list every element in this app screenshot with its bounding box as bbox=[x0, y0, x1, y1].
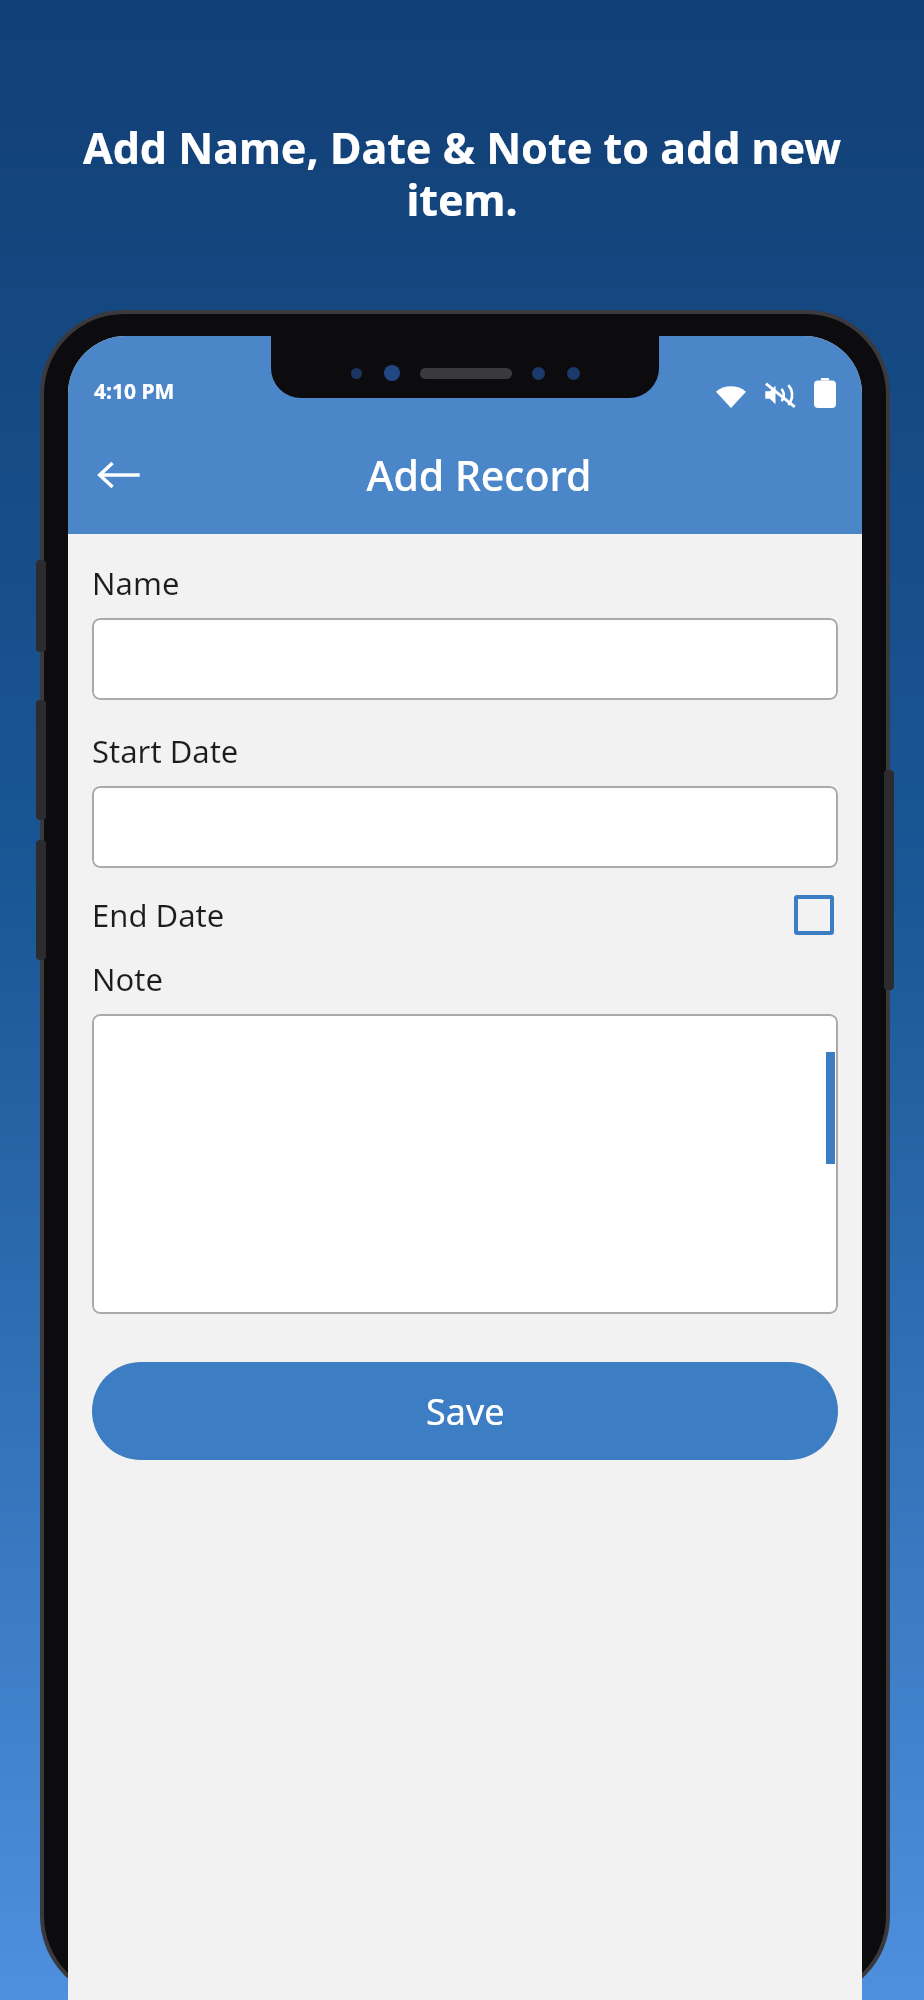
staticText: Save bbox=[426, 1387, 505, 1436]
other: Toggle end date bbox=[794, 895, 834, 935]
staticText: End Date bbox=[92, 894, 225, 936]
staticText: Add Record bbox=[126, 447, 832, 503]
button[interactable] bbox=[92, 1014, 838, 1314]
button[interactable] bbox=[92, 786, 838, 868]
button[interactable]: Save bbox=[92, 1362, 838, 1460]
staticText: Name bbox=[92, 562, 180, 604]
staticText: Add Name, Date & Note to add new item. bbox=[40, 118, 884, 228]
staticText: 4:10 PM bbox=[94, 377, 175, 406]
staticText: Note bbox=[92, 958, 163, 1000]
button[interactable]: Back bbox=[82, 438, 156, 512]
button[interactable]: End Date bbox=[92, 894, 838, 936]
button[interactable] bbox=[92, 618, 838, 700]
staticText: Start Date bbox=[92, 730, 239, 772]
